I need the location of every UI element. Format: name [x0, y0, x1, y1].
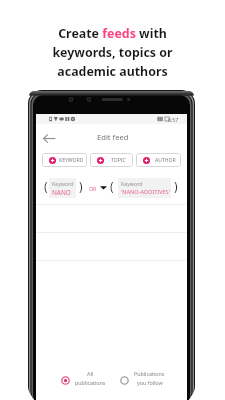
staticText: TOPIC: [111, 157, 126, 164]
staticText: Edit feed: [97, 132, 129, 142]
staticText: publications: [75, 379, 106, 386]
staticText: AUTHOR: [155, 157, 176, 164]
staticText: 'NANO-ADDITIVES': [121, 188, 170, 196]
button[interactable]: Publications: [120, 368, 172, 388]
staticText: ): [79, 178, 83, 194]
staticText: ): [174, 178, 178, 194]
staticText: (: [44, 178, 48, 194]
button[interactable]: Keyword: [118, 178, 171, 198]
staticText: NANO: [52, 188, 71, 197]
staticText: Publications: [134, 370, 165, 377]
button[interactable]: All: [61, 368, 107, 388]
staticText: OR: [89, 185, 97, 192]
button[interactable]: Keyword: [49, 178, 76, 198]
staticText: KEYWORD: [59, 157, 84, 164]
button[interactable]: TOPIC: [90, 153, 133, 167]
staticText: (: [110, 178, 114, 194]
staticText: 6:57: [168, 116, 179, 123]
button[interactable]: KEYWORD: [42, 153, 87, 167]
staticText: Create feeds with keywords, topics or ac…: [52, 25, 173, 79]
button[interactable]: AUTHOR: [136, 153, 181, 167]
button[interactable]: Back: [43, 132, 56, 145]
staticText: Keyword: [52, 180, 74, 187]
staticText: Keyword: [121, 180, 143, 187]
staticText: you follow: [137, 379, 163, 386]
staticText: All: [87, 370, 94, 377]
